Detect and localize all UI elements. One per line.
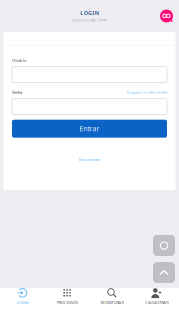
staticText: LOGIN: [80, 9, 99, 16]
staticText: Senha: [12, 89, 22, 95]
staticText: CADASTRAR: [145, 300, 168, 305]
button[interactable]: Desconectar: [12, 157, 167, 162]
staticText: ORQUESTRA DPM: [72, 17, 107, 23]
button[interactable]: Esqueci minha senha: [127, 89, 167, 95]
staticText: Entrar: [79, 124, 99, 133]
button[interactable]: PROCESSOS: [45, 288, 90, 310]
staticText: LOGIN: [16, 300, 28, 305]
staticText: Desconectar: [78, 157, 100, 162]
button[interactable]: LOGIN: [0, 288, 45, 310]
button[interactable]: Messages: [160, 9, 173, 22]
button[interactable]: Refresh: [153, 235, 175, 256]
button[interactable]: MONITORAR: [89, 288, 134, 310]
staticText: Esqueci minha senha: [127, 89, 167, 95]
staticText: PROCESSOS: [57, 300, 78, 305]
button[interactable]: Entrar: [12, 120, 167, 138]
button[interactable]: Scroll to top: [153, 262, 175, 283]
staticText: MONITORAR: [100, 300, 123, 305]
button[interactable]: CADASTRAR: [134, 288, 179, 310]
staticText: Usuário: [12, 57, 26, 63]
